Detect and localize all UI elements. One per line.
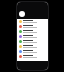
button[interactable] xyxy=(17,44,48,49)
button[interactable] xyxy=(17,29,48,34)
button[interactable] xyxy=(17,34,48,39)
button[interactable] xyxy=(17,19,48,24)
button[interactable] xyxy=(17,39,48,44)
button[interactable] xyxy=(17,24,48,29)
button[interactable] xyxy=(17,54,48,59)
button[interactable]: Profile xyxy=(19,11,25,17)
button[interactable] xyxy=(17,49,48,54)
